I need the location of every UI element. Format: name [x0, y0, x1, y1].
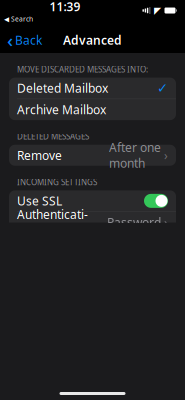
staticText: ✓: [157, 81, 168, 96]
staticText: Deleted Mailbox: [17, 80, 108, 96]
button[interactable]: Use SSL: [9, 190, 176, 211]
staticText: ◤: [154, 5, 161, 16]
staticText: 11:39: [49, 0, 80, 14]
button[interactable]: Deleted Mailbox: [9, 78, 176, 99]
button[interactable]: Authentication: [9, 212, 176, 233]
staticText: Password: [107, 214, 161, 230]
staticText: ›: [164, 147, 168, 163]
staticText: Authentication: [17, 206, 88, 238]
staticText: Use SSL: [17, 193, 62, 209]
button[interactable]: Remove: [9, 145, 176, 166]
staticText: Advanced: [63, 32, 122, 48]
staticText: ›: [164, 214, 168, 230]
button[interactable]: ‹: [0, 27, 49, 53]
staticText: Archive Mailbox: [17, 102, 106, 118]
staticText: ‹: [7, 28, 13, 52]
staticText: Back: [15, 32, 42, 48]
staticText: Remove: [17, 147, 62, 163]
staticText: After one month: [109, 139, 161, 171]
staticText: MOVE DISCARDED MESSAGES INTO:: [17, 64, 148, 75]
staticText: INCOMING SETTINGS: [17, 177, 97, 187]
staticText: ◀ Search: [4, 14, 33, 23]
staticText: DELETED MESSAGES: [17, 131, 89, 142]
button[interactable]: Archive Mailbox: [9, 99, 176, 120]
staticText: Delete from server: [17, 220, 54, 268]
